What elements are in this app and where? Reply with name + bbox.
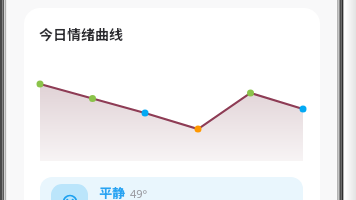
staticText: 49° — [130, 186, 148, 200]
staticText: 今日情绪曲线 — [39, 24, 123, 44]
button[interactable]: 平静 — [40, 177, 303, 200]
staticText: 平静 — [99, 183, 126, 200]
